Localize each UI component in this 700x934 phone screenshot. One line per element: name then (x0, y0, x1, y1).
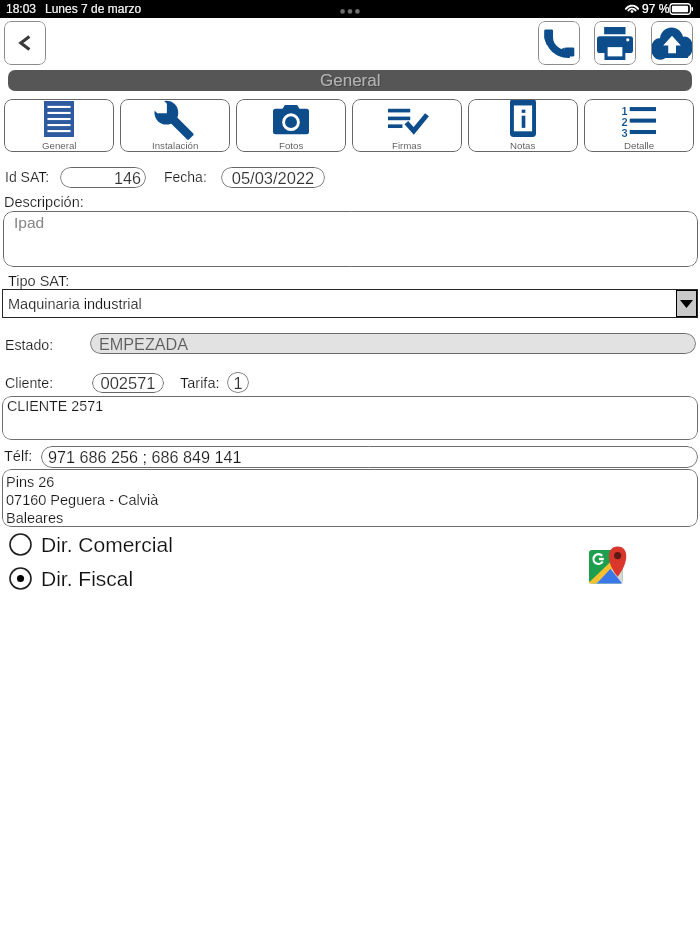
staticText: 3 (621, 127, 628, 139)
button[interactable]: Notas (468, 99, 578, 152)
staticText: General (42, 140, 77, 151)
button[interactable]: Instalación (120, 99, 230, 152)
button[interactable]: 1 (584, 99, 694, 152)
staticText: Id SAT: (5, 169, 50, 185)
button[interactable]: Upload (651, 21, 693, 65)
button[interactable]: Pins 26 (2, 469, 698, 527)
staticText: Firmas (392, 140, 422, 151)
staticText: 146 (60, 169, 141, 187)
staticText: 97 % (642, 2, 670, 15)
button[interactable]: Ipad (3, 211, 698, 267)
staticText: 1 (621, 105, 628, 117)
button[interactable]: Back (4, 21, 46, 65)
staticText: Detalle (624, 140, 655, 151)
staticText: Ipad (14, 214, 45, 231)
staticText: Estado: (5, 337, 54, 353)
staticText: 971 686 256 ; 686 849 141 (48, 448, 242, 466)
button[interactable]: Maquinaria industrial (2, 289, 698, 318)
staticText: CLIENTE 2571 (7, 398, 104, 414)
button[interactable]: Call (538, 21, 580, 65)
staticText: Fotos (279, 140, 304, 151)
staticText: 002571 (92, 374, 164, 392)
staticText: Notas (510, 140, 536, 151)
staticText: General (321, 72, 382, 91)
staticText: Télf: (4, 448, 33, 464)
button[interactable]: Fotos (236, 99, 346, 152)
staticText: Tipo SAT: (8, 273, 70, 289)
staticText: Cliente: (5, 375, 54, 391)
staticText: Descripción: (4, 194, 84, 210)
staticText: 07160 Peguera - Calvià (6, 492, 159, 508)
button[interactable]: Dir. Comercial (9, 533, 173, 556)
button[interactable]: Print (594, 21, 636, 65)
staticText: 05/03/2022 (221, 169, 325, 187)
staticText: EMPEZADA (99, 335, 189, 353)
staticText: General (320, 71, 381, 90)
button[interactable]: 05/03/2022 (221, 167, 325, 188)
staticText: Pins 26 (6, 474, 55, 490)
staticText: Tarifa: (180, 375, 220, 391)
button[interactable]: General (8, 70, 692, 91)
button[interactable]: 002571 (92, 373, 164, 393)
button[interactable]: 971 686 256 ; 686 849 141 (41, 446, 698, 468)
button[interactable]: EMPEZADA (90, 333, 696, 354)
staticText: Instalación (152, 140, 199, 151)
staticText: Fecha: (164, 169, 207, 185)
button[interactable]: 146 (60, 167, 146, 188)
staticText: 1 (227, 374, 249, 392)
button[interactable]: Dir. Fiscal (9, 567, 134, 590)
button[interactable]: General (4, 99, 114, 152)
button[interactable]: Firmas (352, 99, 462, 152)
staticText: 18:03 (6, 2, 37, 15)
staticText: Baleares (6, 510, 64, 526)
staticText: Dir. Comercial (41, 533, 173, 556)
staticText: Dir. Fiscal (41, 567, 134, 590)
staticText: Maquinaria industrial (8, 296, 142, 312)
button[interactable]: CLIENTE 2571 (2, 396, 698, 440)
staticText: 2 (621, 116, 628, 128)
staticText: Lunes 7 de marzo (45, 2, 142, 15)
button[interactable]: 1 (227, 372, 249, 393)
button[interactable]: Open in Maps (583, 546, 627, 586)
